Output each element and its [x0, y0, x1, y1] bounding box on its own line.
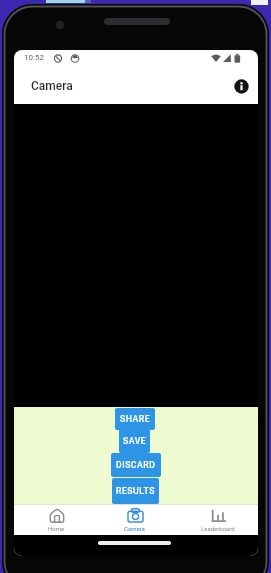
staticText: 10:52 — [24, 53, 44, 62]
button[interactable] — [28, 504, 84, 536]
staticText: SAVE — [123, 436, 147, 446]
button[interactable] — [191, 504, 247, 536]
staticText: Home — [48, 525, 65, 532]
button[interactable]: SAVE — [119, 429, 150, 453]
staticText: Leaderboard — [201, 525, 235, 532]
button[interactable]: SHARE — [115, 408, 155, 430]
button[interactable]: RESULTS — [112, 478, 159, 504]
staticText: SHARE — [120, 414, 151, 424]
staticText: DISCARD — [116, 460, 156, 470]
staticText: RESULTS — [116, 486, 156, 496]
button[interactable] — [107, 504, 163, 536]
staticText: Camera — [31, 79, 73, 93]
button[interactable]: DISCARD — [111, 453, 161, 477]
staticText: Camera — [124, 525, 145, 532]
